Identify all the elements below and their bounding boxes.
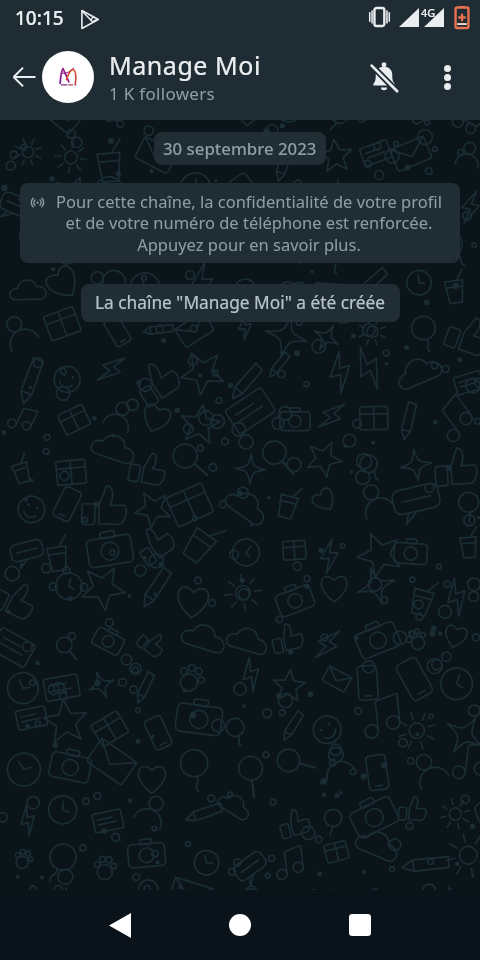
staticText: 10:15 <box>15 5 64 31</box>
button[interactable]: Unmute notifications <box>360 53 408 101</box>
button[interactable]: Channel photo <box>42 51 94 103</box>
button[interactable]: Recent apps <box>300 890 420 960</box>
button[interactable]: Back <box>60 890 180 960</box>
button[interactable]: La chaîne "Manage Moi" a été créée <box>81 284 400 322</box>
staticText: Manage Moi <box>109 48 261 82</box>
button[interactable]: Manage Moi <box>109 48 349 105</box>
button[interactable]: Pour cette chaîne, la confidentialité de… <box>20 183 460 263</box>
staticText: 1 K followers <box>109 82 215 105</box>
staticText: 30 septembre 2023 <box>163 137 317 160</box>
staticText: Pour cette chaîne, la confidentialité de… <box>48 190 450 256</box>
staticText: La chaîne "Manage Moi" a été créée <box>95 291 386 315</box>
staticText: 4G <box>421 5 436 20</box>
button[interactable]: 30 septembre 2023 <box>154 132 326 165</box>
button[interactable]: More options <box>423 53 471 101</box>
button[interactable]: Home <box>180 890 300 960</box>
button[interactable]: Back <box>0 53 48 101</box>
